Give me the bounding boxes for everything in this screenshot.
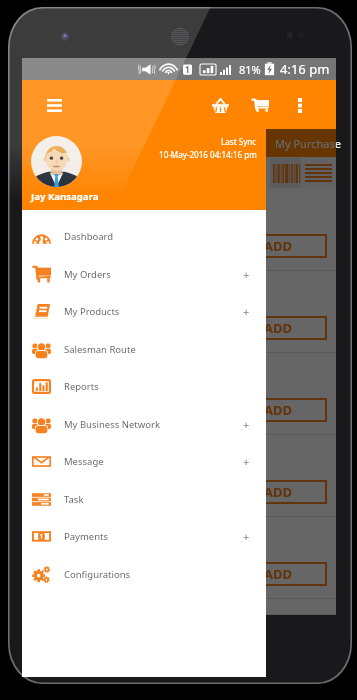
button[interactable]: My Business Network xyxy=(22,406,266,443)
button[interactable]: Scan barcode xyxy=(270,158,301,188)
staticText: My Products xyxy=(64,305,120,318)
button[interactable]: ADD xyxy=(230,234,327,258)
button[interactable]: More options xyxy=(280,83,320,127)
button[interactable]: Salesman Route xyxy=(22,331,266,368)
staticText: + xyxy=(243,267,250,282)
staticText: Message xyxy=(64,455,104,468)
button[interactable]: My Cart xyxy=(22,129,126,157)
button[interactable]: Open navigation drawer xyxy=(36,87,72,123)
staticText: My Cart xyxy=(54,136,95,151)
staticText: + xyxy=(243,454,250,469)
staticText: ADD xyxy=(264,319,293,337)
staticText: Rs. 250.00 xyxy=(30,461,78,475)
staticText: My Purchase xyxy=(275,136,341,151)
button[interactable]: My Orders xyxy=(22,256,266,293)
button[interactable]: Cart xyxy=(240,83,280,127)
button[interactable]: My Purchase xyxy=(231,129,336,157)
staticText: + xyxy=(243,304,250,319)
staticText: Configurations xyxy=(64,568,131,581)
button[interactable]: My Order xyxy=(126,129,231,157)
staticText: Product Name xyxy=(30,277,105,292)
staticText: Product Name xyxy=(30,523,105,538)
staticText: My Orders xyxy=(64,268,111,281)
staticText: 81% xyxy=(239,62,261,77)
staticText: My Business Network xyxy=(64,418,160,431)
button[interactable]: Configurations xyxy=(22,556,266,593)
staticText: 10-May-2016 04:14:16 pm xyxy=(159,149,257,160)
staticText: ADD xyxy=(264,237,293,255)
staticText: Reports xyxy=(64,380,99,393)
staticText: Product Name xyxy=(30,195,105,210)
button[interactable]: My Products xyxy=(22,293,266,330)
button[interactable]: Dashboard xyxy=(22,218,266,255)
staticText: ADD xyxy=(264,565,293,583)
button[interactable]: ADD xyxy=(230,480,327,504)
staticText: Rs. 250.00 xyxy=(30,379,78,393)
staticText: Rs. 250.00 xyxy=(30,297,78,311)
staticText: + xyxy=(243,417,250,432)
staticText: ADD xyxy=(264,483,293,501)
staticText: 4:16 pm xyxy=(280,60,330,78)
staticText: Dashboard xyxy=(64,230,114,243)
button[interactable]: Reports xyxy=(22,368,266,405)
staticText: Qty : 5 xyxy=(30,234,61,248)
staticText: Jay Kansagara xyxy=(31,190,99,203)
button[interactable]: Task xyxy=(22,481,266,518)
staticText: ADD xyxy=(264,401,293,419)
button[interactable]: List view xyxy=(303,158,334,188)
button[interactable]: Payments xyxy=(22,518,266,555)
button[interactable]: Basket xyxy=(200,83,240,127)
staticText: Last Sync xyxy=(221,136,257,147)
button[interactable]: ADD xyxy=(230,398,327,422)
staticText: Qty : 5 xyxy=(30,480,61,494)
staticText: + xyxy=(243,529,250,544)
staticText: Payments xyxy=(64,530,109,543)
staticText: Qty : 5 xyxy=(30,316,61,330)
staticText: Qty : 5 xyxy=(30,562,61,576)
staticText: Salesman Route xyxy=(64,343,136,356)
button[interactable]: ADD xyxy=(230,316,327,340)
button[interactable]: Message xyxy=(22,443,266,480)
staticText: Task xyxy=(64,493,84,506)
button[interactable]: ADD xyxy=(230,562,327,586)
